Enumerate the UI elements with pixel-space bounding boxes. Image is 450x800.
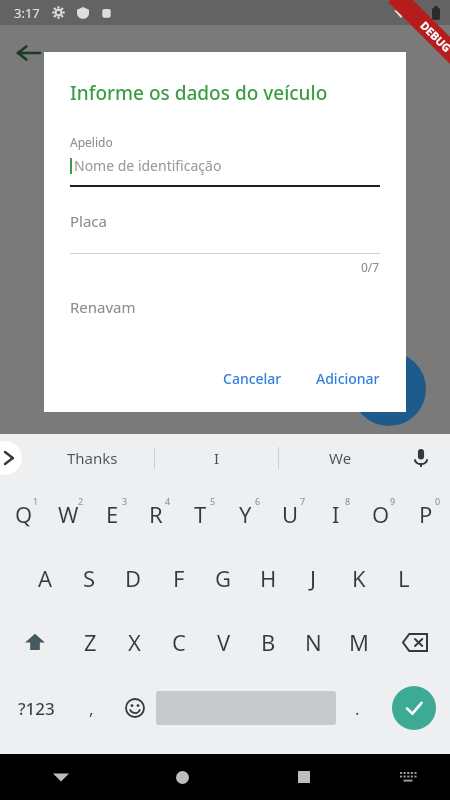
- staticText: P: [419, 499, 433, 529]
- button[interactable]: O: [358, 482, 403, 546]
- button[interactable]: T: [178, 482, 223, 546]
- staticText: Z: [84, 627, 97, 657]
- staticText: U: [282, 499, 299, 529]
- staticText: T: [194, 499, 207, 529]
- staticText: 1: [33, 495, 39, 507]
- button[interactable]: Y: [223, 482, 268, 546]
- button[interactable]: Adicionar: [306, 361, 390, 396]
- staticText: I: [332, 499, 340, 529]
- staticText: 5: [210, 495, 216, 507]
- button[interactable]: U: [268, 482, 313, 546]
- staticText: 4: [165, 495, 171, 507]
- staticText: E: [106, 499, 119, 529]
- button[interactable]: Placa: [70, 211, 380, 275]
- button[interactable]: We: [279, 434, 402, 482]
- button[interactable]: Back: [10, 34, 48, 72]
- staticText: Informe os dados do veículo: [70, 80, 328, 106]
- button[interactable]: Cancelar: [213, 361, 292, 396]
- button[interactable]: .: [336, 674, 379, 742]
- staticText: H: [260, 563, 277, 593]
- staticText: We: [329, 448, 352, 468]
- staticText: I: [214, 448, 220, 468]
- staticText: Y: [239, 499, 252, 529]
- button[interactable]: E: [90, 482, 134, 546]
- button[interactable]: J: [291, 546, 336, 610]
- button[interactable]: ?123: [2, 674, 70, 742]
- button[interactable]: Expand suggestions: [0, 441, 22, 475]
- button[interactable]: M: [336, 610, 381, 674]
- staticText: X: [128, 627, 141, 657]
- button[interactable]: Q: [2, 482, 46, 546]
- button[interactable]: N: [291, 610, 336, 674]
- staticText: C: [172, 627, 186, 657]
- button[interactable]: Switch keyboard: [365, 754, 450, 800]
- staticText: Renavam: [70, 297, 136, 317]
- button[interactable]: I: [313, 482, 358, 546]
- button[interactable]: Back: [0, 754, 121, 800]
- staticText: J: [310, 563, 317, 593]
- button[interactable]: R: [134, 482, 178, 546]
- button[interactable]: ,: [70, 674, 113, 742]
- staticText: O: [372, 499, 390, 529]
- staticText: F: [173, 563, 185, 593]
- staticText: 9: [390, 495, 396, 507]
- staticText: Cancelar: [223, 369, 282, 388]
- staticText: R: [149, 499, 163, 529]
- button[interactable]: C: [156, 610, 201, 674]
- staticText: 8: [345, 495, 351, 507]
- button[interactable]: P: [403, 482, 448, 546]
- staticText: B: [261, 627, 276, 657]
- staticText: Thanks: [67, 448, 118, 468]
- button[interactable]: Add vehicle: [352, 352, 426, 426]
- staticText: V: [217, 627, 231, 657]
- button[interactable]: Renavam: [70, 297, 136, 317]
- button[interactable]: Voice input: [406, 443, 436, 473]
- staticText: Adicionar: [316, 369, 380, 388]
- staticText: DEBUG: [417, 18, 450, 55]
- button[interactable]: Apelido: [70, 134, 380, 187]
- staticText: D: [125, 563, 142, 593]
- button[interactable]: L: [381, 546, 426, 610]
- button[interactable]: G: [201, 546, 246, 610]
- button[interactable]: D: [111, 546, 156, 610]
- staticText: 3: [122, 495, 128, 507]
- staticText: A: [38, 563, 53, 593]
- button[interactable]: Recents: [243, 754, 365, 800]
- button[interactable]: X: [112, 610, 156, 674]
- staticText: Q: [15, 499, 33, 529]
- staticText: 7: [300, 495, 306, 507]
- staticText: G: [215, 563, 232, 593]
- staticText: S: [83, 563, 96, 593]
- staticText: Nome de identificação: [74, 156, 222, 175]
- staticText: Placa: [70, 211, 107, 231]
- staticText: 3:17: [14, 4, 40, 22]
- staticText: .: [355, 697, 360, 720]
- staticText: ?123: [18, 697, 55, 720]
- button[interactable]: W: [46, 482, 90, 546]
- button[interactable]: Emoji: [113, 674, 156, 742]
- button[interactable]: Shift: [2, 610, 68, 674]
- staticText: N: [305, 627, 322, 657]
- staticText: 0: [435, 495, 441, 507]
- button[interactable]: Z: [68, 610, 112, 674]
- button[interactable]: K: [336, 546, 381, 610]
- button[interactable]: I: [155, 434, 278, 482]
- staticText: M: [349, 627, 369, 657]
- button[interactable]: V: [201, 610, 246, 674]
- staticText: 6: [255, 495, 261, 507]
- button[interactable]: A: [23, 546, 67, 610]
- staticText: ,: [89, 697, 94, 720]
- staticText: 2: [78, 495, 84, 507]
- button[interactable]: S: [67, 546, 111, 610]
- button[interactable]: Home: [121, 754, 243, 800]
- button[interactable]: F: [156, 546, 201, 610]
- staticText: L: [398, 563, 410, 593]
- button[interactable]: Enter: [392, 686, 436, 730]
- staticText: Apelido: [70, 134, 113, 150]
- button[interactable]: Thanks: [30, 434, 154, 482]
- button[interactable]: Backspace: [381, 610, 448, 674]
- button[interactable]: B: [246, 610, 291, 674]
- button[interactable]: H: [246, 546, 291, 610]
- staticText: 0/7: [361, 259, 380, 275]
